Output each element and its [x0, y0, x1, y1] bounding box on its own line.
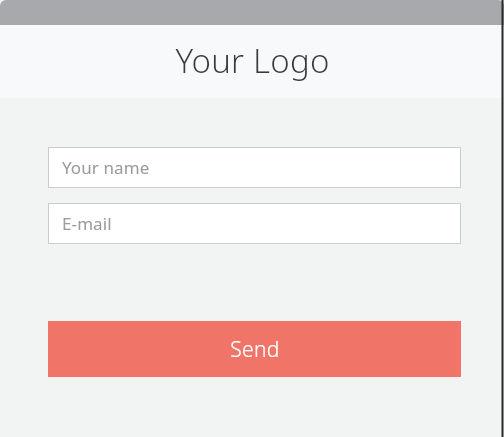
button[interactable]: E-mail	[48, 203, 461, 244]
staticText: Your Logo	[175, 38, 330, 83]
staticText: Your name	[62, 156, 150, 179]
staticText: Send	[230, 335, 280, 364]
button[interactable]: Your name	[48, 147, 461, 188]
staticText: E-mail	[62, 212, 112, 235]
button[interactable]: Send	[48, 321, 461, 377]
